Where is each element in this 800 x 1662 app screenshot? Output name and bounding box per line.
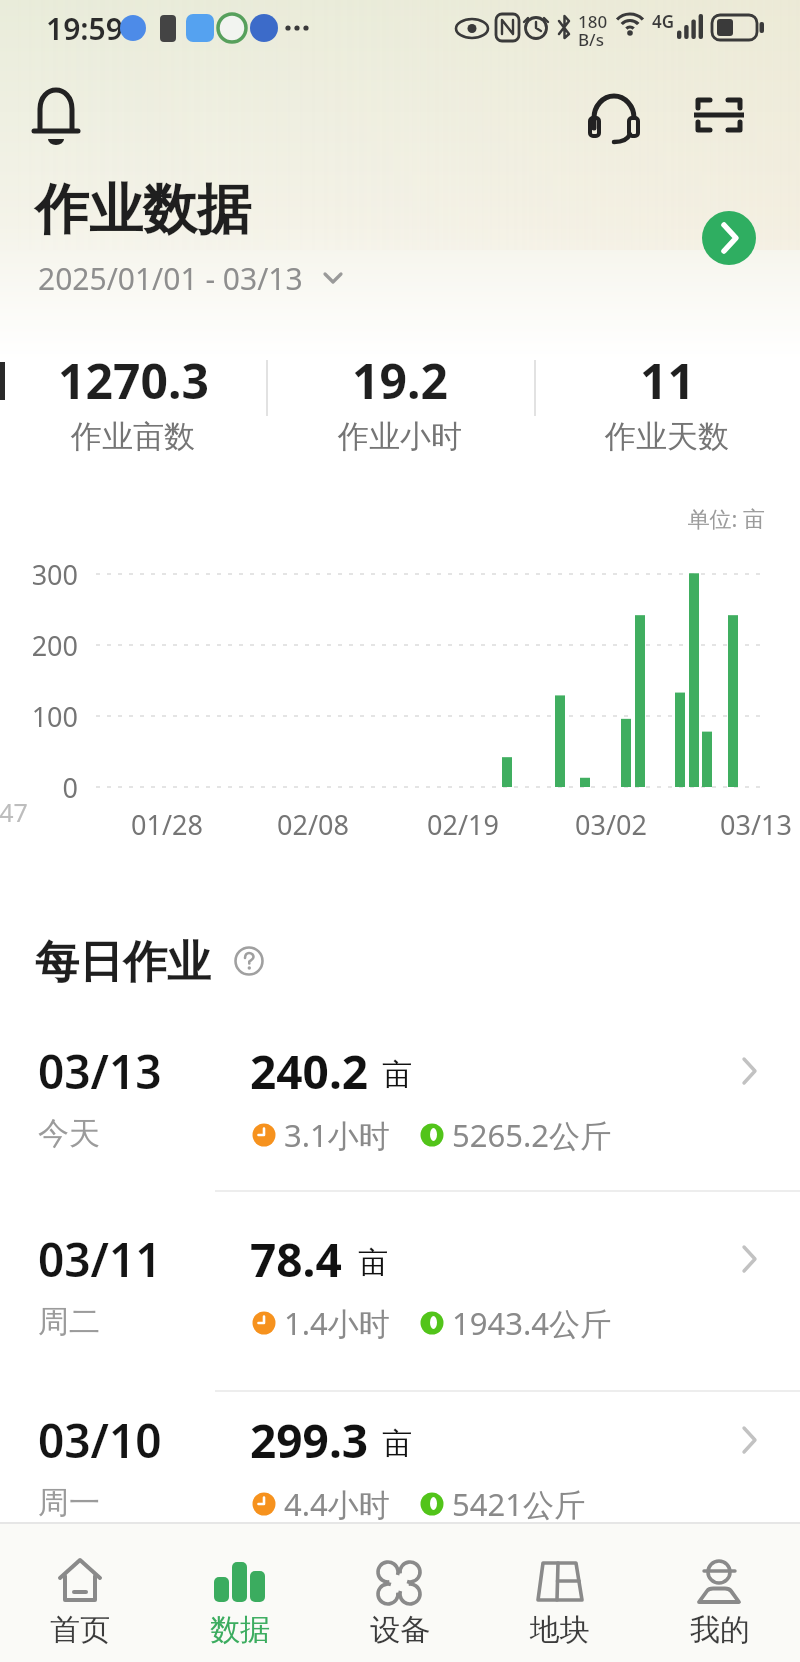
staticText: 240.2 [250, 1040, 369, 1103]
staticText: 02/19 [427, 806, 499, 843]
staticText: 1270.3 [58, 348, 209, 413]
staticText: 作业小时 [338, 417, 462, 456]
staticText: 299.3 [250, 1409, 369, 1472]
staticText: 作业天数 [605, 417, 729, 456]
staticText: 03/11 [38, 1228, 162, 1291]
staticText: 03/13 [720, 806, 792, 843]
staticText: 作业数据 [35, 176, 251, 244]
staticText: 作业亩数 [71, 417, 195, 456]
staticText: 今天 [38, 1114, 100, 1153]
staticText: 78.4 [250, 1228, 342, 1291]
staticText: 4G [652, 10, 675, 30]
staticText: 03/10 [38, 1409, 162, 1472]
button[interactable] [320, 1522, 480, 1662]
staticText: 19.2 [352, 348, 448, 413]
staticText: 02/08 [277, 806, 349, 843]
staticText: 5265.2公斤 [452, 1114, 611, 1156]
staticText: 地块 [530, 1611, 590, 1649]
staticText: 亩 [382, 1425, 412, 1463]
staticText: 周二 [38, 1302, 100, 1341]
button[interactable] [30, 255, 360, 301]
button[interactable] [160, 1522, 320, 1662]
button[interactable] [28, 85, 84, 141]
button[interactable] [0, 1029, 800, 1179]
staticText: 4.4小时 [284, 1483, 390, 1525]
staticText: 单位: 亩 [687, 503, 765, 533]
staticText: 1.4小时 [284, 1302, 390, 1344]
staticText: 我的 [690, 1611, 750, 1649]
staticText: 200 [31, 627, 78, 664]
staticText: 300 [31, 556, 78, 593]
staticText: 数据 [210, 1611, 270, 1649]
staticText: 5421公斤 [452, 1483, 585, 1525]
button[interactable] [694, 92, 744, 138]
button[interactable] [0, 1217, 800, 1367]
button[interactable] [0, 1398, 800, 1548]
staticText: 1,047 [0, 795, 28, 829]
staticText: 100 [31, 698, 78, 735]
staticText: 2025/01/01 - 03/13 [38, 258, 303, 299]
button[interactable] [702, 211, 756, 265]
staticText: 03/13 [38, 1040, 162, 1103]
staticText: 首页 [50, 1611, 110, 1649]
staticText: 每日作业 [35, 935, 211, 990]
button[interactable] [590, 90, 638, 142]
staticText: 设备 [370, 1611, 430, 1649]
staticText: 03/02 [575, 806, 647, 843]
staticText: 亩 [382, 1056, 412, 1094]
button[interactable] [0, 1522, 160, 1662]
staticText: 01/28 [131, 806, 203, 843]
button[interactable] [640, 1522, 800, 1662]
staticText: B/s [578, 28, 604, 48]
staticText: 11 [640, 348, 695, 413]
staticText: 周一 [38, 1483, 100, 1522]
button[interactable] [480, 1522, 640, 1662]
staticText: 1943.4公斤 [452, 1302, 611, 1344]
staticText: 亩 [358, 1244, 388, 1282]
staticText: 19:59 [46, 8, 123, 49]
staticText: 180 [578, 10, 608, 30]
button[interactable] [233, 945, 265, 977]
staticText: 0 [62, 769, 78, 806]
staticText: 3.1小时 [284, 1114, 390, 1156]
